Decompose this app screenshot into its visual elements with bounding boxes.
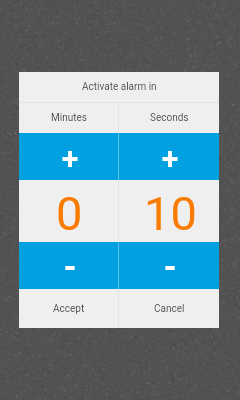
staticText: 10 <box>144 186 197 241</box>
staticText: Accept <box>53 303 85 315</box>
staticText: 0 <box>56 186 83 241</box>
button[interactable]: Decrease minutes <box>19 242 118 289</box>
staticText: Activate alarm in <box>82 81 157 93</box>
button[interactable]: 0 <box>19 180 118 242</box>
button[interactable]: Minutes <box>19 103 118 133</box>
button[interactable]: Seconds <box>119 103 219 133</box>
button[interactable]: Accept <box>19 289 118 328</box>
staticText: Minutes <box>51 112 87 124</box>
button[interactable]: Cancel <box>119 289 219 328</box>
button[interactable]: Decrease seconds <box>119 242 219 289</box>
button[interactable]: 10 <box>119 180 219 242</box>
staticText: Cancel <box>154 303 185 315</box>
button[interactable]: Increase seconds <box>119 133 219 180</box>
staticText: Seconds <box>150 112 189 124</box>
button[interactable]: Increase minutes <box>19 133 118 180</box>
